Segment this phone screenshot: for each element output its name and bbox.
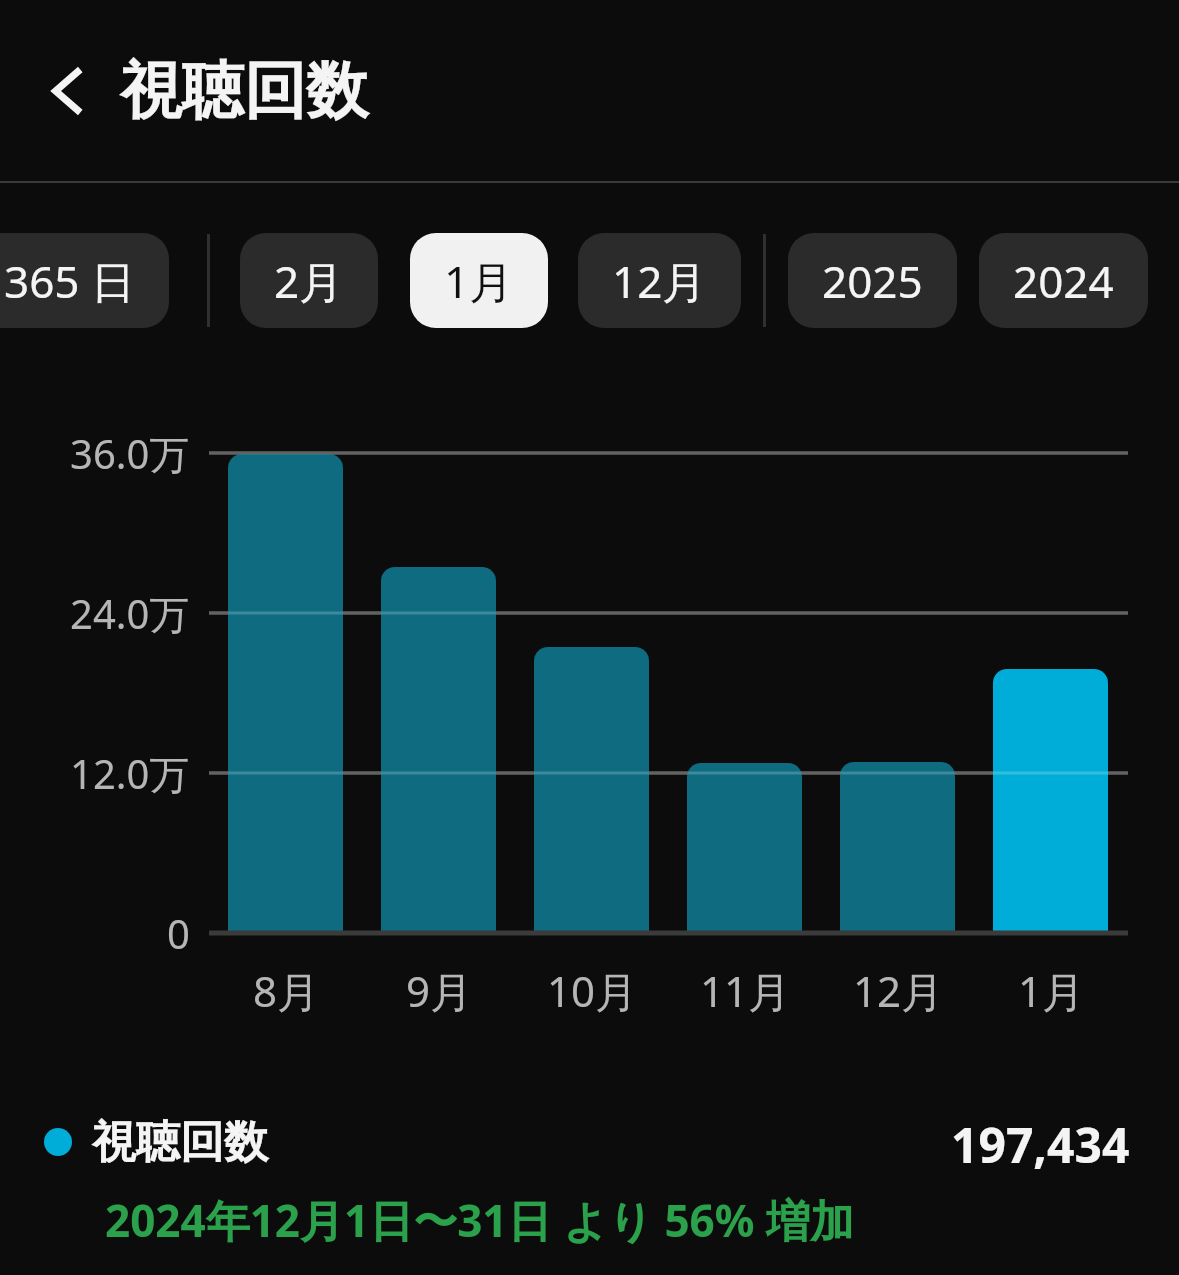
staticText: 10月 (547, 962, 638, 1019)
button[interactable]: 2月 (240, 233, 378, 328)
staticText: 36.0万 (70, 426, 190, 481)
button[interactable]: 12月 (578, 233, 741, 328)
button[interactable]: 2024 (979, 233, 1148, 328)
staticText: 1月 (1018, 962, 1085, 1019)
staticText: 197,434 (951, 1112, 1130, 1172)
staticText: 12月 (853, 962, 944, 1019)
staticText: 視聴回数 (120, 52, 368, 130)
staticText: 9月 (406, 962, 473, 1019)
staticText: 24.0万 (70, 586, 190, 641)
staticText: 2月 (274, 251, 344, 311)
staticText: 視聴回数 (92, 1115, 268, 1170)
button[interactable]: 1月 (410, 233, 548, 328)
button[interactable]: 365 日 (0, 233, 169, 328)
staticText: 2024 (1013, 251, 1114, 311)
staticText: 365 日 (4, 251, 135, 311)
staticText: 11月 (700, 962, 791, 1019)
staticText: 8月 (253, 962, 320, 1019)
staticText: 1月 (444, 251, 514, 311)
staticText: 2024年12月1日〜31日 より 56% 増加 (105, 1190, 854, 1250)
staticText: 0 (167, 906, 190, 960)
staticText: 2025 (822, 251, 923, 311)
staticText: 12月 (612, 251, 707, 311)
button[interactable]: Back (30, 52, 108, 130)
button[interactable]: 2025 (788, 233, 957, 328)
staticText: 12.0万 (70, 746, 190, 801)
